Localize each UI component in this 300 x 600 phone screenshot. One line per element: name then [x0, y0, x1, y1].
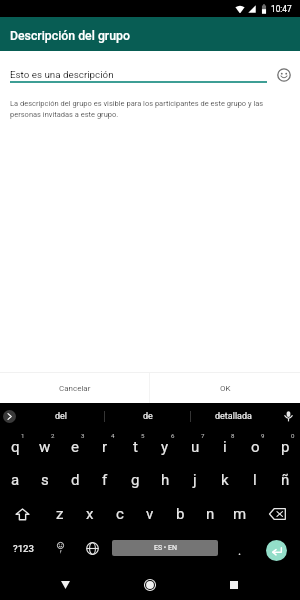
staticText: 4 — [111, 432, 115, 439]
button[interactable]: r — [90, 429, 120, 463]
staticText: l — [253, 471, 257, 489]
button[interactable]: ES • EN — [112, 540, 218, 556]
staticText: 5 — [141, 432, 145, 439]
button[interactable]: Expand toolbar — [0, 403, 18, 429]
staticText: r — [102, 438, 108, 456]
staticText: ES • EN — [154, 544, 177, 552]
button[interactable]: b — [165, 497, 195, 531]
staticText: k — [221, 471, 229, 489]
button[interactable]: t — [120, 429, 150, 463]
staticText: 9 — [261, 432, 265, 439]
button[interactable]: e — [60, 429, 90, 463]
button[interactable]: Recent apps — [170, 569, 298, 600]
staticText: 8 — [231, 432, 235, 439]
button[interactable]: . — [218, 531, 261, 565]
button[interactable]: Cancelar — [0, 373, 149, 403]
staticText: j — [193, 471, 197, 489]
button[interactable]: n — [195, 497, 225, 531]
button[interactable]: o — [240, 429, 270, 463]
button[interactable]: Backspace — [255, 497, 300, 531]
button[interactable]: Change language — [72, 531, 112, 565]
button[interactable]: Emoji — [48, 531, 72, 565]
staticText: . — [238, 544, 242, 558]
staticText: v — [146, 505, 154, 523]
button[interactable]: OK — [150, 373, 300, 403]
staticText: ?123 — [13, 543, 35, 554]
staticText: t — [133, 438, 138, 456]
staticText: h — [161, 471, 170, 489]
button[interactable]: p — [270, 429, 300, 463]
button[interactable]: a — [0, 463, 30, 497]
button[interactable]: d — [60, 463, 90, 497]
staticText: 2 — [51, 432, 55, 439]
staticText: La descripción del grupo es visible para… — [10, 99, 282, 119]
staticText: p — [281, 438, 290, 456]
staticText: w — [39, 438, 51, 456]
staticText: o — [251, 438, 260, 456]
button[interactable]: Shift — [0, 497, 45, 531]
staticText: detallada — [215, 411, 252, 422]
button[interactable]: q — [0, 429, 30, 463]
button[interactable]: z — [45, 497, 75, 531]
button[interactable]: i — [210, 429, 240, 463]
button[interactable]: Hide keyboard — [0, 569, 130, 600]
button[interactable]: de — [105, 403, 190, 429]
button[interactable]: y — [150, 429, 180, 463]
staticText: z — [56, 505, 64, 523]
staticText: c — [116, 505, 124, 523]
staticText: 3 — [81, 432, 85, 439]
staticText: y — [161, 438, 169, 456]
staticText: del — [55, 411, 68, 422]
button[interactable]: u — [180, 429, 210, 463]
staticText: d — [71, 471, 80, 489]
button[interactable]: g — [120, 463, 150, 497]
staticText: u — [191, 438, 200, 456]
staticText: i — [223, 438, 227, 456]
staticText: Cancelar — [59, 384, 91, 393]
staticText: 10:47 — [271, 4, 292, 14]
button[interactable]: ñ — [270, 463, 300, 497]
button[interactable]: c — [105, 497, 135, 531]
button[interactable]: l — [240, 463, 270, 497]
button[interactable]: detallada — [191, 403, 276, 429]
staticText: e — [71, 438, 79, 456]
button[interactable]: ?123 — [0, 531, 48, 565]
staticText: Descripción del grupo — [10, 29, 130, 43]
staticText: 0 — [291, 432, 295, 439]
staticText: g — [131, 471, 140, 489]
button[interactable]: v — [135, 497, 165, 531]
button[interactable]: del — [18, 403, 104, 429]
staticText: a — [11, 471, 20, 489]
staticText: f — [102, 471, 108, 489]
staticText: OK — [220, 384, 231, 393]
staticText: q — [11, 438, 20, 456]
staticText: b — [176, 505, 185, 523]
staticText: 6 — [171, 432, 175, 439]
staticText: n — [206, 505, 215, 523]
button[interactable]: h — [150, 463, 180, 497]
staticText: de — [143, 411, 153, 422]
button[interactable]: Home — [130, 569, 170, 600]
button[interactable]: Enter — [261, 531, 300, 565]
staticText: Esto es una descripción — [10, 69, 114, 80]
button[interactable]: m — [225, 497, 255, 531]
button[interactable]: Voice input — [276, 403, 300, 429]
staticText: 1 — [21, 432, 25, 439]
staticText: 7 — [201, 432, 205, 439]
button[interactable]: x — [75, 497, 105, 531]
staticText: m — [233, 505, 247, 523]
staticText: ñ — [281, 471, 290, 489]
button[interactable]: w — [30, 429, 60, 463]
staticText: x — [86, 505, 94, 523]
button[interactable]: j — [180, 463, 210, 497]
button[interactable]: Emoji — [271, 64, 297, 86]
button[interactable]: s — [30, 463, 60, 497]
button[interactable]: k — [210, 463, 240, 497]
staticText: s — [41, 471, 49, 489]
button[interactable]: f — [90, 463, 120, 497]
